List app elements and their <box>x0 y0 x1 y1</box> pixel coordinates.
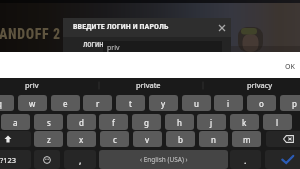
staticText: t <box>129 98 132 109</box>
button[interactable]: t <box>116 95 145 111</box>
staticText: k <box>242 117 247 128</box>
button[interactable]: q <box>0 95 14 111</box>
button[interactable]: u <box>182 95 211 111</box>
button[interactable]: v <box>133 131 162 147</box>
staticText: x <box>79 134 84 145</box>
button[interactable]: i <box>214 95 243 111</box>
button[interactable]: x <box>67 131 96 147</box>
staticText: ‹ English (USA) › <box>140 155 188 164</box>
staticText: ANDOFF 2 <box>0 26 61 42</box>
staticText: priv <box>107 43 120 53</box>
staticText: o <box>259 98 264 109</box>
button[interactable]: . <box>230 150 261 169</box>
staticText: v <box>145 134 150 145</box>
staticText: j <box>210 117 213 128</box>
staticText: , <box>79 154 82 166</box>
staticText: l <box>276 117 279 128</box>
staticText: z <box>47 134 51 145</box>
staticText: p <box>292 98 297 109</box>
button[interactable]: Symbols <box>0 150 31 169</box>
staticText: ВВЕДИТЕ ЛОГИН И ПАРОЛЬ <box>73 22 169 31</box>
button[interactable]: Emoji <box>34 150 60 169</box>
staticText: y <box>161 98 166 109</box>
staticText: priv <box>25 80 39 90</box>
button[interactable]: h <box>165 114 194 130</box>
staticText: privacy <box>247 80 273 90</box>
button[interactable]: b <box>166 131 195 147</box>
button[interactable]: private <box>96 78 200 93</box>
staticText: w <box>29 98 36 109</box>
button[interactable]: l <box>263 114 292 130</box>
button[interactable]: e <box>51 95 80 111</box>
button[interactable]: g <box>132 114 161 130</box>
button[interactable]: s <box>34 114 63 130</box>
button[interactable]: priv <box>0 78 100 93</box>
button[interactable]: f <box>99 114 128 130</box>
staticText: q <box>0 98 2 109</box>
button[interactable]: j <box>197 114 226 130</box>
button[interactable]: Shift <box>0 131 31 147</box>
button[interactable]: p <box>280 95 300 111</box>
button[interactable]: o <box>247 95 276 111</box>
button[interactable]: r <box>83 95 112 111</box>
button[interactable]: d <box>67 114 96 130</box>
button[interactable]: privacy <box>204 78 300 93</box>
button[interactable]: n <box>199 131 228 147</box>
staticText: e <box>63 98 68 109</box>
button[interactable]: a <box>1 114 30 130</box>
button[interactable]: y <box>149 95 178 111</box>
button[interactable]: OK <box>285 62 295 72</box>
staticText: u <box>194 98 199 109</box>
staticText: i <box>227 98 230 109</box>
staticText: s <box>47 117 51 128</box>
staticText: r <box>96 98 100 109</box>
staticText: ?123 <box>0 155 17 165</box>
staticText: f <box>112 117 115 128</box>
staticText: n <box>211 134 216 145</box>
staticText: g <box>144 117 149 128</box>
button[interactable]: k <box>230 114 259 130</box>
button[interactable]: z <box>34 131 63 147</box>
staticText: private <box>136 80 161 90</box>
staticText: b <box>178 134 183 145</box>
button[interactable]: Enter <box>265 150 300 169</box>
button[interactable]: w <box>18 95 47 111</box>
button[interactable]: Close <box>214 20 229 35</box>
staticText: OK <box>285 62 295 72</box>
button[interactable]: Space <box>99 150 228 169</box>
button[interactable]: m <box>232 131 261 147</box>
staticText: c <box>113 134 117 145</box>
staticText: . <box>244 154 247 166</box>
staticText: m <box>243 134 251 145</box>
button[interactable]: c <box>100 131 129 147</box>
button[interactable]: priv <box>103 41 222 53</box>
button[interactable]: Backspace <box>266 131 300 147</box>
staticText: h <box>177 117 182 128</box>
staticText: a <box>13 117 18 128</box>
staticText: ЛОГИН: <box>83 41 106 49</box>
button[interactable]: , <box>64 150 96 169</box>
staticText: d <box>79 117 84 128</box>
